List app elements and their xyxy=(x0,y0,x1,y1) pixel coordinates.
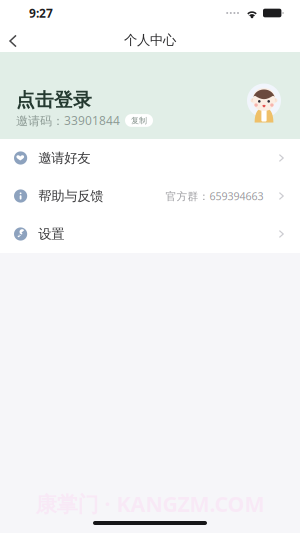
staticText: 个人中心 xyxy=(124,32,176,48)
button[interactable]: 帮助与反馈 xyxy=(0,177,300,215)
staticText: 复制 xyxy=(131,116,147,125)
staticText: 9:27 xyxy=(29,5,53,21)
staticText: 康掌门 · KANGZM.COM xyxy=(35,490,264,518)
button[interactable]: 点击登录 xyxy=(16,89,92,111)
button[interactable]: 复制 xyxy=(125,114,153,127)
button[interactable]: 邀请好友 xyxy=(0,139,300,177)
staticText: 邀请码：33901844 xyxy=(16,112,120,128)
staticText: 设置 xyxy=(38,226,64,242)
button[interactable]: 返回 xyxy=(0,21,30,52)
staticText: 点击登录 xyxy=(16,89,92,111)
staticText: 邀请好友 xyxy=(38,150,90,166)
staticText: 帮助与反馈 xyxy=(38,188,103,204)
button[interactable]: 设置 xyxy=(0,215,300,253)
button[interactable]: 头像 xyxy=(247,83,281,123)
staticText: 官方群：659394663 xyxy=(166,189,264,203)
